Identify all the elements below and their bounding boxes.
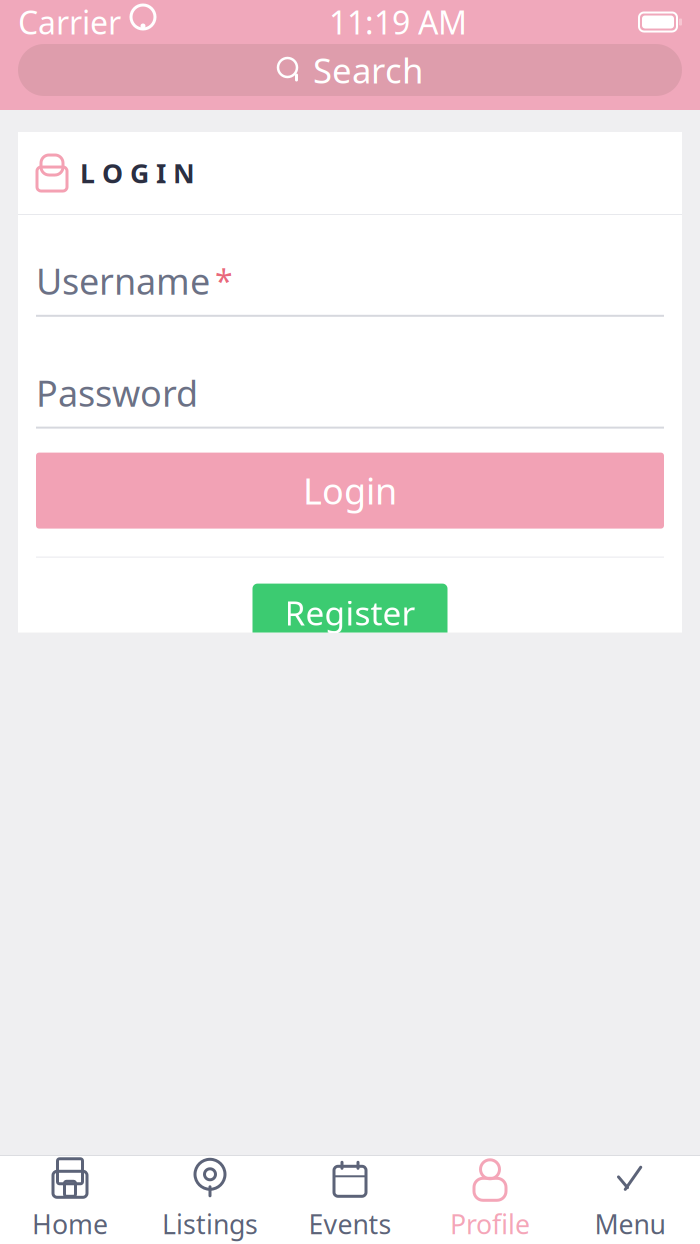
staticText: Profile: [450, 1206, 530, 1242]
button[interactable]: Register: [252, 584, 447, 642]
staticText: Search: [313, 47, 423, 93]
staticText: Username: [36, 257, 210, 305]
staticText: Listings: [162, 1206, 258, 1242]
staticText: Login: [303, 467, 397, 514]
staticText: Events: [308, 1206, 391, 1242]
button[interactable]: Login: [36, 453, 664, 529]
button[interactable]: Menu: [560, 1156, 700, 1244]
button[interactable]: Events: [280, 1156, 420, 1244]
staticText: Carrier: [18, 1, 121, 43]
button[interactable]: Profile: [420, 1156, 560, 1244]
staticText: Password: [36, 369, 198, 417]
staticText: Register: [284, 590, 415, 635]
staticText: *: [215, 260, 233, 302]
button[interactable]: Listings: [140, 1156, 280, 1244]
staticText: Menu: [594, 1206, 665, 1242]
button[interactable]: Home: [0, 1156, 140, 1244]
staticText: Home: [32, 1206, 108, 1242]
button[interactable]: Search: [18, 44, 682, 96]
staticText: L O G I N: [80, 155, 195, 191]
staticText: 11:19 AM: [329, 1, 467, 43]
